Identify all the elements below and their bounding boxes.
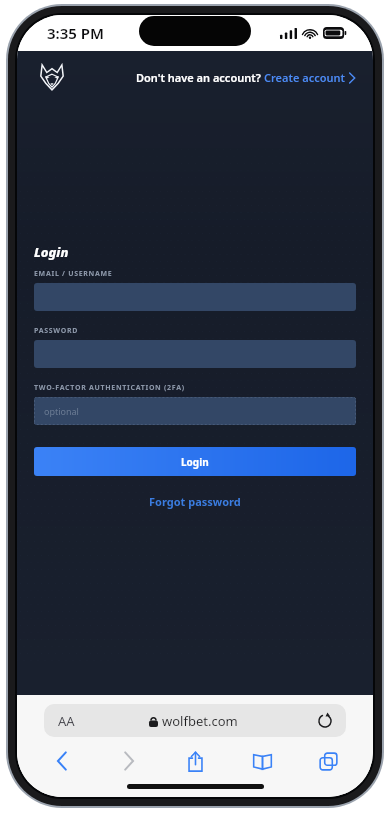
button[interactable]: Wolfbet home (37, 62, 67, 92)
staticText: Login (34, 243, 69, 261)
staticText: PASSWORD (34, 326, 79, 336)
button[interactable]: optional (34, 397, 356, 425)
staticText: Create account (264, 70, 345, 85)
button[interactable]: Reload (312, 708, 338, 734)
button[interactable]: Bookmarks (245, 744, 279, 778)
staticText: optional (44, 405, 79, 417)
staticText: EMAIL / USERNAME (34, 269, 113, 279)
button[interactable]: AA (44, 704, 346, 737)
button[interactable]: Forgot password (141, 490, 249, 513)
button[interactable]: Forward (112, 744, 146, 778)
button[interactable]: Back (45, 744, 79, 778)
staticText: Don't have an account? (136, 70, 264, 85)
staticText: TWO-FACTOR AUTHENTICATION (2FA) (34, 383, 185, 393)
button[interactable]: Login (34, 447, 356, 476)
button[interactable]: Don't have an account? (134, 64, 357, 91)
button[interactable]: Tabs (311, 744, 345, 778)
staticText: Login (181, 455, 209, 469)
staticText: wolfbet.com (162, 712, 238, 730)
button[interactable]: Share (178, 744, 212, 778)
staticText: AA (58, 712, 75, 730)
staticText: 3:35 PM (47, 23, 104, 43)
